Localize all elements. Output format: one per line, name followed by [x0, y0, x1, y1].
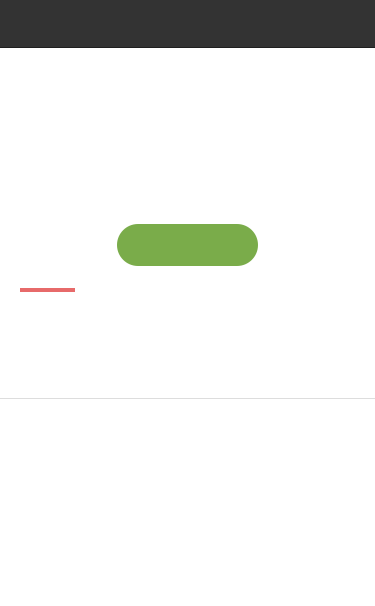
button[interactable]: Primary action	[117, 224, 258, 266]
